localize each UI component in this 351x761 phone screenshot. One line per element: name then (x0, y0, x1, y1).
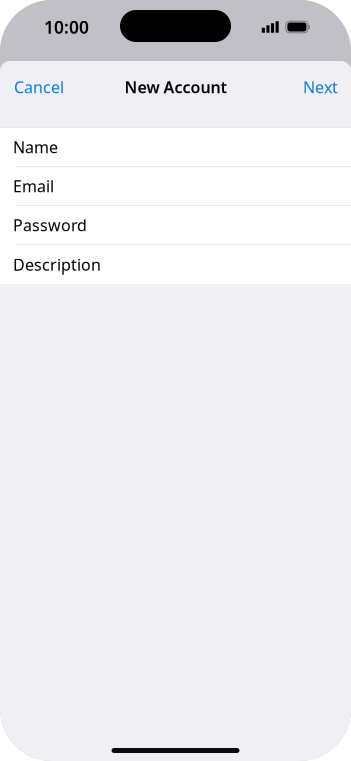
button[interactable]: Email (0, 167, 351, 206)
button[interactable]: Name (0, 128, 351, 167)
button[interactable]: Password (0, 206, 351, 245)
button[interactable]: Cancel (14, 65, 64, 109)
staticText: Description (13, 254, 101, 275)
staticText: Name (13, 136, 58, 158)
staticText: Cancel (14, 76, 64, 98)
staticText: Email (13, 175, 54, 197)
staticText: Next (303, 76, 338, 98)
staticText: Password (13, 214, 87, 236)
staticText: New Account (124, 76, 226, 98)
staticText: 10:00 (44, 15, 89, 38)
button[interactable]: Description (0, 245, 351, 284)
button[interactable]: Next (303, 65, 338, 109)
